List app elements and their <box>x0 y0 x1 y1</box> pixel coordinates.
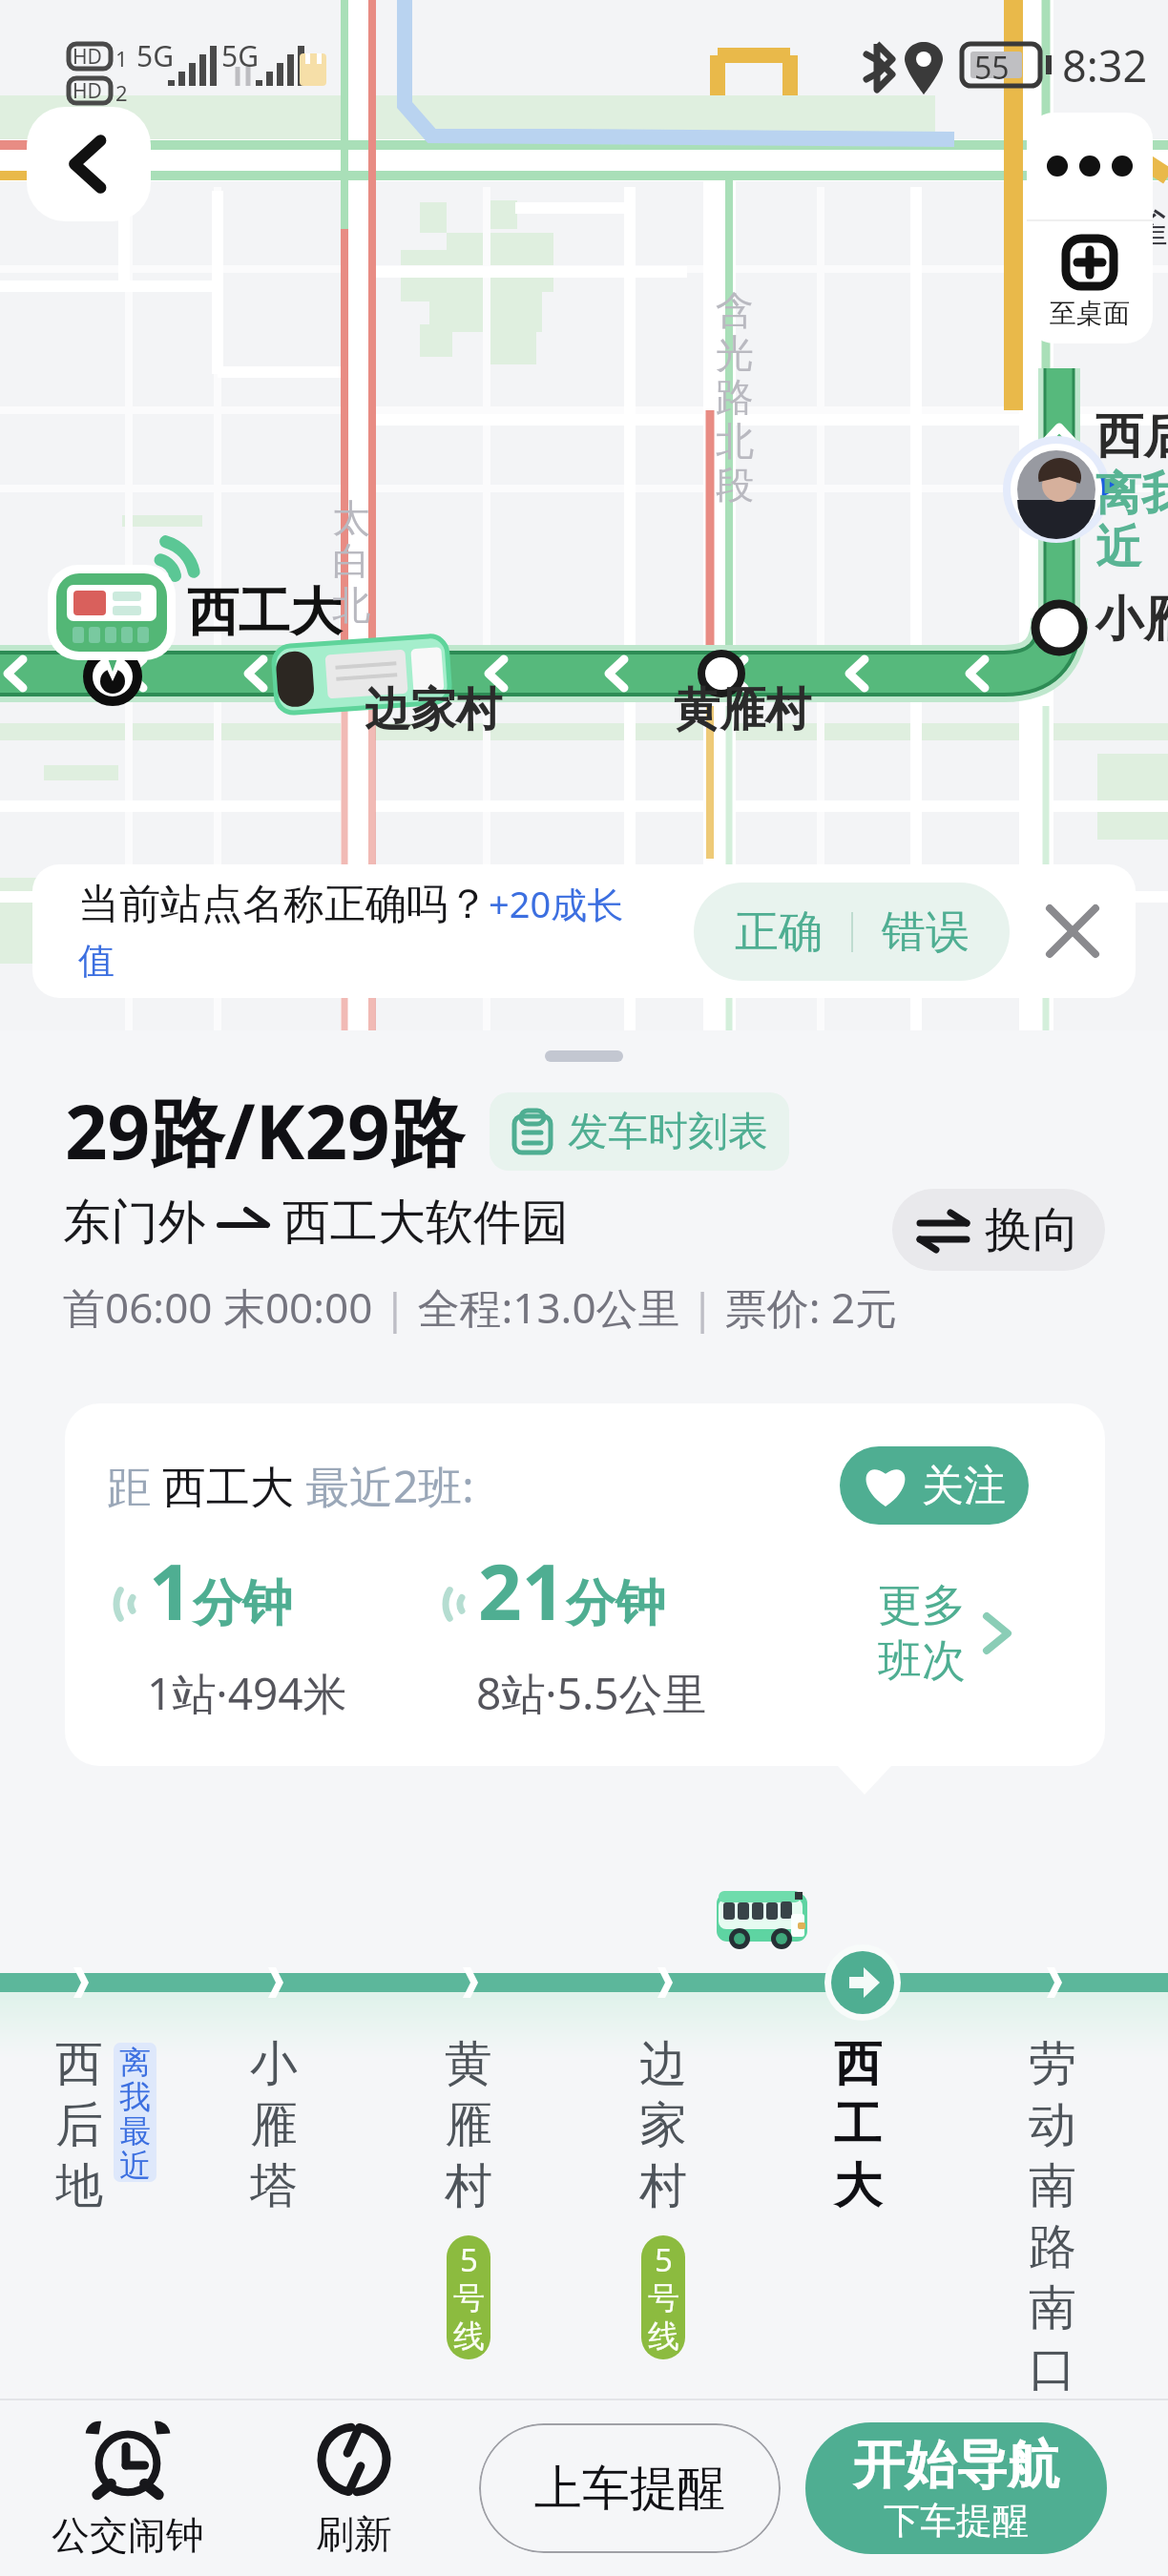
staticText: 含 光 路 北 段 <box>716 286 754 509</box>
staticText: 黄 雁 村 <box>445 2034 492 2216</box>
staticText: 更多 班次 <box>878 1578 966 1689</box>
button[interactable]: 黄 雁 村 <box>416 2034 607 2416</box>
button[interactable]: Add to home screen <box>1027 221 1153 343</box>
staticText: 8:32 <box>1062 36 1148 94</box>
staticText: HD <box>73 43 102 71</box>
button[interactable]: 劳 动 南 路 南 口 <box>1000 2034 1168 2416</box>
staticText: 5 号 线 <box>453 2238 485 2357</box>
button[interactable]: 换向 <box>892 1189 1105 1271</box>
button[interactable]: 更多 班次 <box>878 1578 1012 1689</box>
staticText: 东门外 <box>63 1193 206 1253</box>
staticText: 21 <box>478 1538 566 1642</box>
button[interactable]: 正确 <box>694 883 1010 981</box>
staticText: 分钟 <box>566 1572 665 1635</box>
staticText: 5G <box>221 36 259 75</box>
staticText: 正确 <box>735 904 823 960</box>
staticText: 关注 <box>922 1460 1006 1512</box>
staticText: 西工大 <box>187 580 342 645</box>
staticText: 5G <box>136 36 174 75</box>
staticText: 8站·5.5公里 <box>476 1663 707 1723</box>
staticText: 小雁 <box>1095 590 1168 650</box>
staticText: 离我 近 <box>1095 466 1168 576</box>
staticText: 刷新 <box>316 2510 392 2558</box>
staticText: 1站·494米 <box>147 1663 347 1723</box>
staticText: 5 号 线 <box>648 2238 679 2357</box>
button[interactable]: 边 家 村 <box>611 2034 802 2416</box>
staticText: 西后 <box>1095 406 1168 467</box>
staticText: 公交闹钟 <box>52 2511 204 2559</box>
button[interactable]: 关注 <box>840 1446 1029 1525</box>
staticText: 55 <box>974 47 1010 89</box>
staticText: 西工大软件园 <box>282 1193 569 1253</box>
button[interactable]: Close <box>1010 864 1136 998</box>
staticText: 1 <box>115 44 128 73</box>
staticText: 黄雁村 <box>674 681 811 738</box>
button[interactable]: 发车时刻表 <box>490 1092 789 1171</box>
staticText: 开始导航 <box>853 2433 1059 2498</box>
staticText: 太 白 北 <box>332 494 370 630</box>
staticText: 距 西工大 最近2班: <box>107 1456 474 1516</box>
staticText: 西 工 大 <box>834 2034 882 2216</box>
button[interactable]: Back <box>27 107 151 221</box>
staticText: 下车提醒 <box>884 2498 1029 2544</box>
staticText: 2 <box>115 78 128 107</box>
staticText: 分钟 <box>193 1572 292 1635</box>
staticText: 当前站点名称正确吗？+20成长值 <box>78 879 648 985</box>
staticText: 发车时刻表 <box>568 1107 768 1157</box>
staticText: 至桌面 <box>1050 297 1130 330</box>
staticText: 上车提醒 <box>534 2459 725 2519</box>
button[interactable]: 刷新 <box>256 2400 452 2576</box>
button[interactable]: 上车提醒 <box>479 2423 781 2553</box>
staticText: 换向 <box>985 1200 1080 1260</box>
staticText: 错误 <box>882 904 970 960</box>
staticText: 1 <box>149 1538 193 1642</box>
button[interactable]: More options <box>1027 113 1153 219</box>
button[interactable]: 公交闹钟 <box>0 2400 256 2576</box>
button[interactable]: 西 后 地 <box>27 2034 218 2416</box>
button[interactable]: 距 西工大 最近2班: <box>65 1403 1105 1766</box>
button[interactable]: 西 工 大 <box>805 2034 996 2416</box>
staticText: 29路/K29路 <box>65 1080 465 1182</box>
button[interactable]: 小 雁 塔 <box>221 2034 412 2416</box>
staticText: 离 我 最 近 <box>119 2043 151 2182</box>
staticText: 首06:00 末00:00 | 全程:13.0公里 | 票价: 2元 <box>63 1278 898 1336</box>
staticText: 边 家 村 <box>639 2034 687 2216</box>
staticText: 雀 <box>1126 202 1168 255</box>
staticText: 劳 动 南 路 南 口 <box>1029 2034 1076 2399</box>
staticText: 边家村 <box>365 681 502 738</box>
staticText: 小 雁 塔 <box>250 2034 298 2216</box>
staticText: 西 后 地 <box>55 2034 103 2216</box>
button[interactable]: 开始导航 <box>805 2422 1107 2554</box>
staticText: HD <box>73 77 102 105</box>
